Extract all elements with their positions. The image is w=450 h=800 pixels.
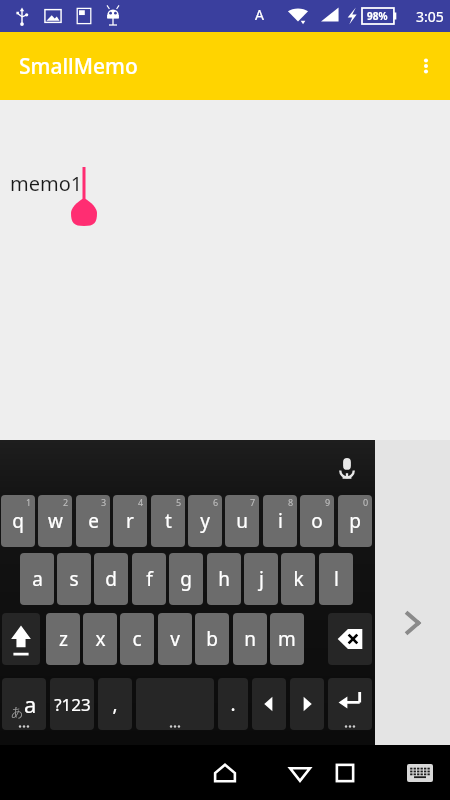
button[interactable]: i (263, 495, 297, 547)
button[interactable]: y (188, 495, 222, 547)
staticText: ?123 (54, 693, 91, 716)
button[interactable]: d (94, 553, 128, 605)
staticText: g (180, 566, 192, 592)
button[interactable]: e (76, 495, 110, 547)
button[interactable]: Keyboard (398, 751, 442, 795)
staticText: y (200, 508, 210, 534)
staticText: n (244, 626, 256, 652)
button[interactable]: s (57, 553, 91, 605)
button[interactable]: Delete (328, 613, 372, 665)
button[interactable]: p (338, 495, 372, 547)
staticText: s (69, 566, 79, 592)
button[interactable]: f (132, 553, 166, 605)
staticText: a (24, 689, 37, 719)
button[interactable]: a (20, 553, 54, 605)
staticText: m (278, 626, 296, 652)
button[interactable]: l (319, 553, 353, 605)
staticText: p (349, 508, 361, 534)
staticText: u (236, 508, 248, 534)
button[interactable]: Switch language (2, 678, 46, 730)
staticText: 8 (288, 496, 294, 508)
button[interactable]: Expand (387, 597, 439, 649)
button[interactable]: x (83, 613, 117, 665)
button[interactable]: Move right (290, 678, 324, 730)
staticText: 3:05 (416, 7, 444, 26)
button[interactable]: j (244, 553, 278, 605)
staticText: x (95, 626, 106, 652)
button[interactable]: r (113, 495, 147, 547)
staticText: j (259, 566, 264, 592)
staticText: 5 (176, 496, 182, 508)
staticText: . (230, 691, 236, 717)
button[interactable]: q (1, 495, 35, 547)
staticText: t (165, 508, 172, 534)
button[interactable]: c (120, 613, 154, 665)
staticText: r (126, 508, 134, 534)
button[interactable]: Back (75, 745, 450, 800)
button[interactable]: t (151, 495, 185, 547)
staticText: e (88, 508, 99, 534)
staticText: d (105, 566, 117, 592)
staticText: SmallMemo (19, 52, 138, 81)
button[interactable]: , (98, 678, 132, 730)
staticText: k (293, 566, 304, 592)
button[interactable]: u (225, 495, 259, 547)
button[interactable]: g (169, 553, 203, 605)
staticText: h (218, 566, 230, 592)
button[interactable]: Move left (252, 678, 286, 730)
button[interactable]: n (233, 613, 267, 665)
staticText: , (112, 691, 118, 717)
button[interactable]: v (158, 613, 192, 665)
staticText: l (334, 566, 339, 592)
button[interactable]: Enter (328, 678, 372, 730)
staticText: 4 (138, 496, 144, 508)
button[interactable]: z (46, 613, 80, 665)
button[interactable]: More options (402, 42, 450, 90)
staticText: w (48, 508, 63, 534)
staticText: 3 (101, 496, 107, 508)
staticText: b (206, 626, 218, 652)
staticText: a (32, 566, 43, 592)
staticText: c (132, 626, 142, 652)
staticText: 0 (363, 496, 369, 508)
button[interactable]: m (270, 613, 304, 665)
button[interactable]: Recents (315, 745, 375, 800)
button[interactable]: . (218, 678, 248, 730)
staticText: 9 (325, 496, 331, 508)
button[interactable]: Space (136, 678, 214, 730)
staticText: q (12, 508, 24, 534)
button[interactable]: b (195, 613, 229, 665)
staticText: z (59, 626, 68, 652)
staticText: i (278, 508, 283, 534)
staticText: あ (11, 704, 24, 719)
button[interactable]: o (300, 495, 334, 547)
button[interactable]: w (38, 495, 72, 547)
staticText: 2 (63, 496, 69, 508)
staticText: memo1 (10, 170, 83, 197)
staticText: 1 (26, 496, 32, 508)
button[interactable]: memo1 (4, 160, 114, 235)
staticText: A (255, 5, 264, 24)
staticText: 7 (250, 496, 256, 508)
button[interactable]: h (207, 553, 241, 605)
staticText: 6 (213, 496, 219, 508)
button[interactable]: Voice input (325, 446, 369, 490)
staticText: o (311, 508, 323, 534)
staticText: v (170, 626, 180, 652)
staticText: f (146, 566, 153, 592)
button[interactable]: Home (195, 745, 255, 800)
button[interactable]: ?123 (50, 678, 94, 730)
button[interactable]: k (281, 553, 315, 605)
button[interactable]: Shift (2, 613, 40, 665)
staticText: 98% (367, 9, 388, 23)
